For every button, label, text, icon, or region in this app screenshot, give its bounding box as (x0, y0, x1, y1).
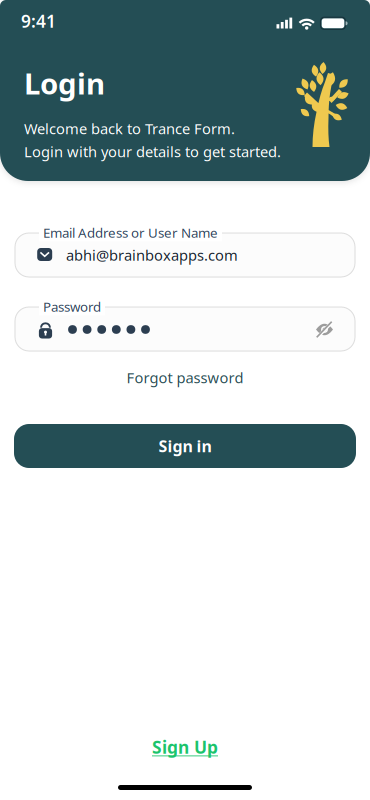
button[interactable]: Sign Up (152, 735, 218, 758)
staticText: abhi@brainboxapps.com (66, 245, 238, 265)
staticText: Email Address or User Name (43, 224, 218, 241)
staticText: Login with your details to get started. (24, 142, 281, 161)
staticText: Sign in (158, 435, 211, 457)
staticText: Welcome back to Trance Form. (24, 119, 235, 138)
button[interactable]: Forgot password (126, 368, 243, 387)
staticText: Login (24, 63, 105, 102)
staticText: Forgot password (126, 368, 243, 387)
button[interactable]: Sign in (14, 424, 356, 468)
staticText: 9:41 (21, 9, 56, 32)
button[interactable] (15, 307, 355, 351)
button[interactable]: abhi@brainboxapps.com (15, 233, 355, 277)
staticText: Sign Up (152, 735, 218, 758)
button[interactable] (314, 319, 334, 339)
staticText: Password (43, 298, 101, 315)
